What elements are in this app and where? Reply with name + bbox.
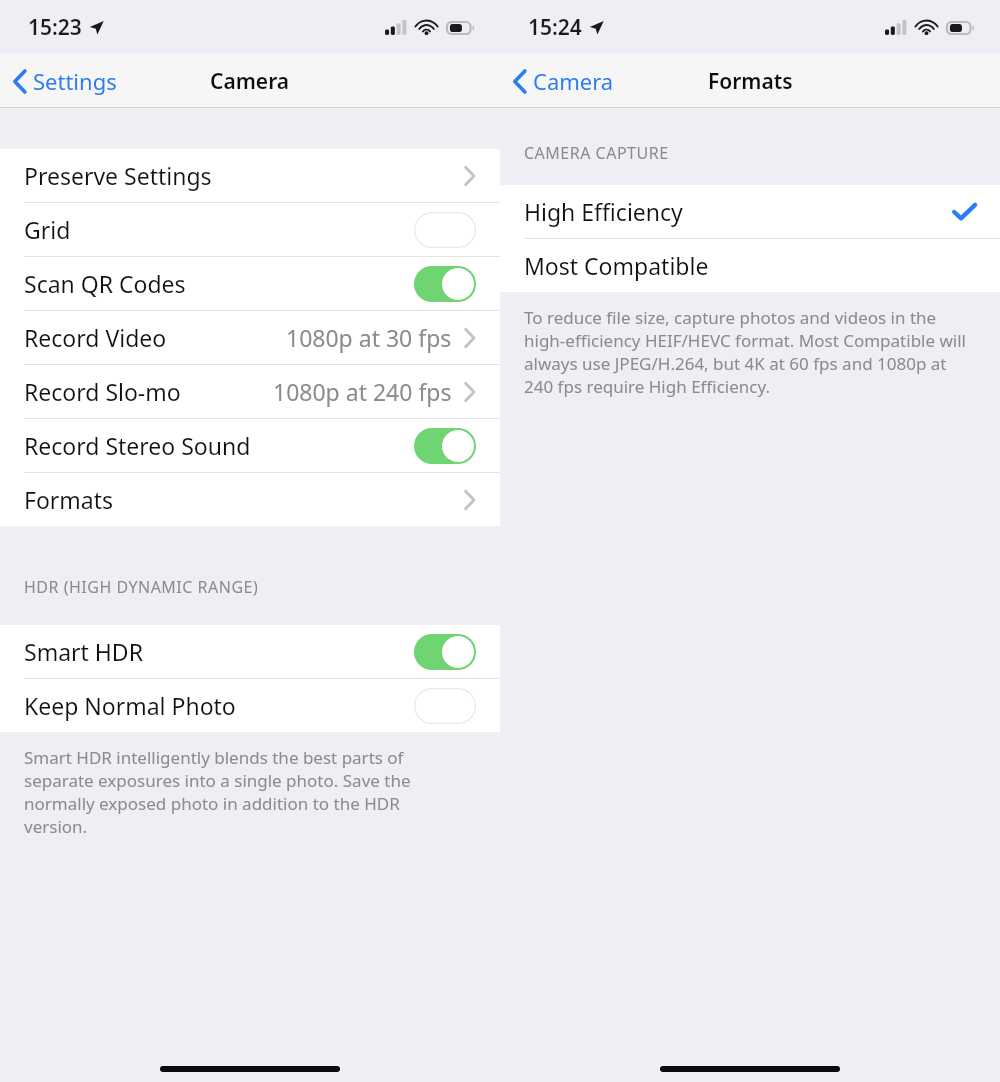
staticText: Formats	[708, 67, 793, 96]
button[interactable]: Camera	[500, 60, 626, 102]
staticText: HDR (HIGH DYNAMIC RANGE)	[24, 576, 259, 598]
staticText: 15:23	[28, 13, 82, 42]
other: Selected	[953, 203, 976, 221]
staticText: High Efficiency	[524, 196, 683, 227]
staticText: Smart HDR	[24, 636, 143, 667]
button[interactable]: Smart HDR	[0, 625, 500, 678]
staticText: Smart HDR intelligently blends the best …	[24, 746, 466, 838]
staticText: Keep Normal Photo	[24, 690, 236, 721]
button[interactable]: Record Video	[0, 311, 500, 364]
staticText: 15:24	[528, 13, 582, 42]
staticText: Preserve Settings	[24, 160, 212, 191]
staticText: Scan QR Codes	[24, 268, 186, 299]
staticText: Grid	[24, 214, 71, 245]
button[interactable]: Scan QR Codes	[0, 257, 500, 310]
button[interactable]: High Efficiency	[500, 185, 1000, 238]
button[interactable]: Keep Normal Photo	[0, 679, 500, 732]
button[interactable]: Preserve Settings	[0, 149, 500, 202]
staticText: Record Video	[24, 322, 167, 353]
button[interactable]: Most Compatible	[500, 239, 1000, 292]
staticText: Formats	[24, 484, 114, 515]
staticText: To reduce file size, capture photos and …	[524, 306, 966, 398]
button[interactable]: Record Stereo Sound	[0, 419, 500, 472]
staticText: Record Slo-mo	[24, 376, 181, 407]
button[interactable]: Formats	[0, 473, 500, 526]
button[interactable]: Settings	[0, 60, 129, 102]
staticText: 1080p at 30 fps	[286, 322, 452, 353]
button[interactable]: Grid	[0, 203, 500, 256]
staticText: CAMERA CAPTURE	[524, 142, 669, 164]
staticText: Most Compatible	[524, 250, 709, 281]
staticText: Record Stereo Sound	[24, 430, 251, 461]
staticText: Settings	[33, 66, 117, 96]
button[interactable]: Record Slo-mo	[0, 365, 500, 418]
staticText: Camera	[210, 67, 290, 96]
staticText: 1080p at 240 fps	[273, 376, 452, 407]
staticText: Camera	[533, 66, 614, 96]
